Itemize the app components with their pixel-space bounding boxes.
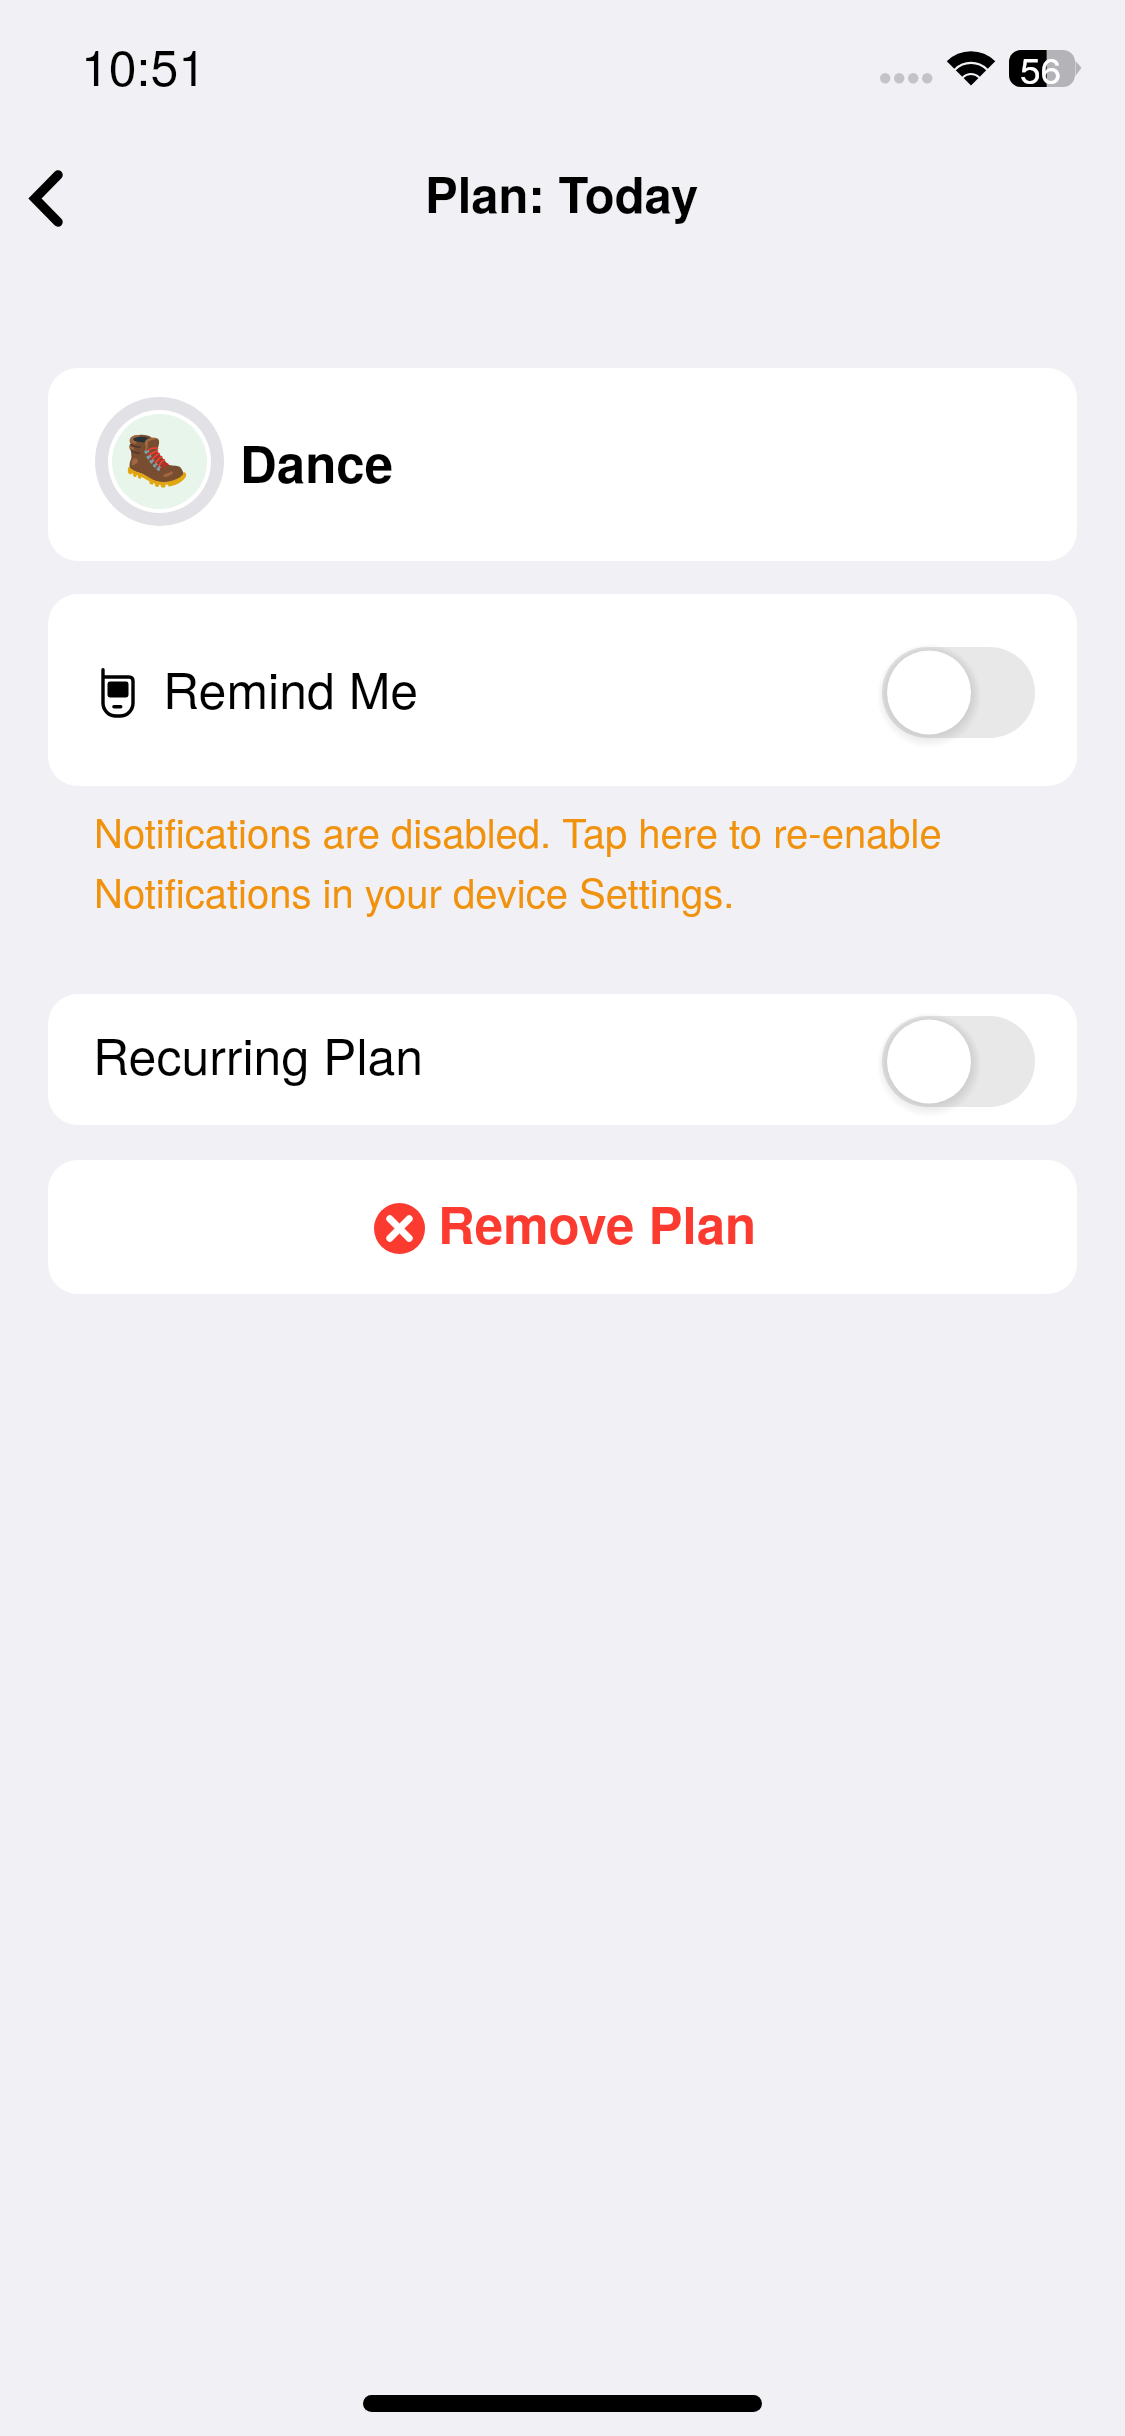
staticText: Notifications are disabled. Tap here to … — [94, 802, 999, 919]
button[interactable]: Notifications are disabled. Tap here to … — [94, 802, 999, 919]
button[interactable]: 🥾 — [48, 368, 1077, 561]
staticText: 10:51 — [81, 29, 207, 101]
button[interactable]: Recurring Plan — [48, 994, 1077, 1125]
staticText: 56 — [1020, 42, 1062, 95]
button[interactable]: Remove Plan — [48, 1160, 1077, 1294]
staticText: Recurring Plan — [93, 1018, 424, 1090]
button[interactable]: Back — [0, 152, 92, 244]
staticText: Dance — [240, 426, 394, 499]
staticText: Remind Me — [163, 652, 419, 724]
staticText: Plan: Today — [425, 158, 699, 228]
button[interactable]: Remind Me — [48, 594, 1077, 786]
staticText: 🥾 — [124, 428, 190, 490]
staticText: Remove Plan — [438, 1187, 757, 1260]
button[interactable]: Remind Me — [882, 647, 1035, 738]
button[interactable]: Recurring Plan — [882, 1016, 1035, 1107]
